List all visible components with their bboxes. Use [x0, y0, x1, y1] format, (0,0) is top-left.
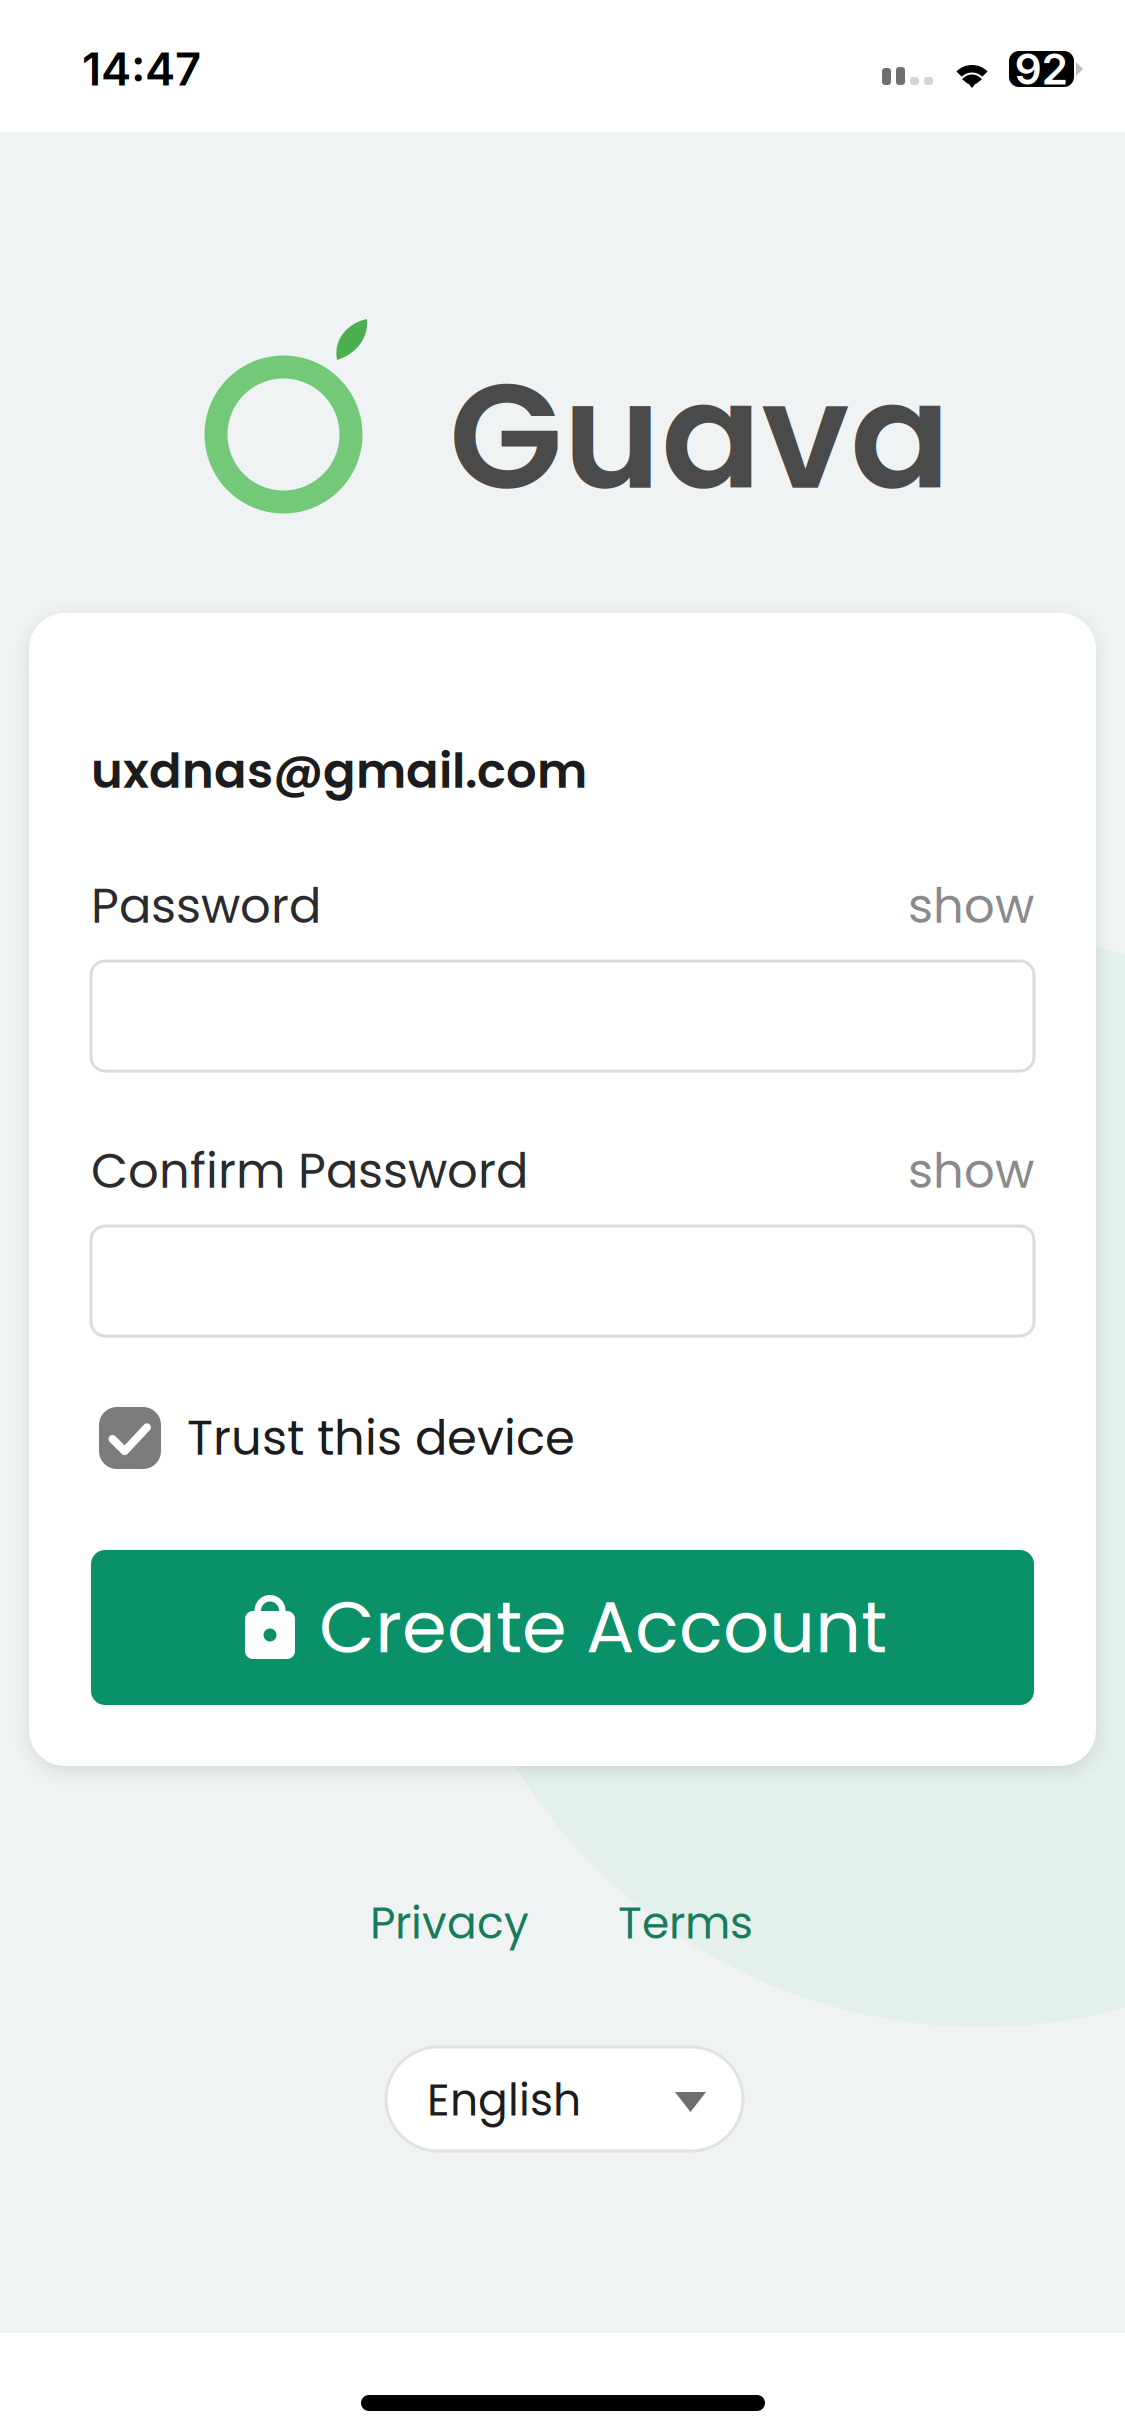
staticText: Guava: [449, 332, 950, 540]
staticText: Trust this device: [187, 1404, 575, 1472]
staticText: show: [908, 872, 1034, 940]
staticText: uxdnas@gmail.com: [91, 737, 587, 805]
button[interactable]: English: [386, 2047, 743, 2151]
staticText: Create Account: [319, 1577, 887, 1677]
staticText: show: [908, 1137, 1034, 1205]
staticText: Privacy: [370, 1892, 529, 1954]
button[interactable]: Create Account: [91, 1550, 1034, 1705]
staticText: English: [427, 2069, 581, 2131]
button[interactable]: Trust this device: [99, 1407, 1042, 1469]
button[interactable]: show: [908, 1137, 1034, 1205]
button[interactable]: Privacy: [370, 1892, 529, 1954]
staticText: 92: [1014, 43, 1068, 95]
staticText: Password: [91, 872, 321, 940]
staticText: 14:47: [82, 42, 201, 96]
button[interactable]: show: [908, 872, 1034, 940]
staticText: Terms: [618, 1892, 753, 1954]
staticText: Confirm Password: [91, 1137, 528, 1205]
button[interactable]: Terms: [618, 1892, 753, 1954]
